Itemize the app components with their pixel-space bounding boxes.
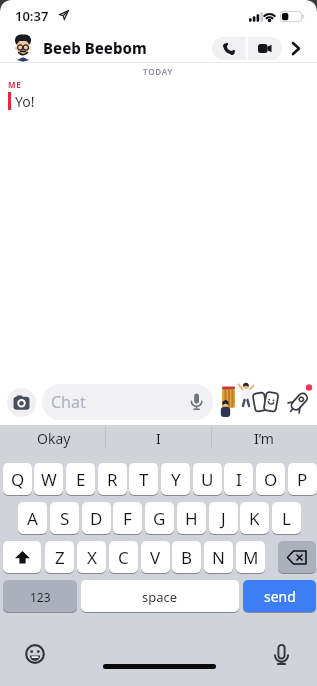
button[interactable]: 123 bbox=[3, 580, 77, 613]
staticText: C bbox=[118, 546, 129, 569]
staticText: E bbox=[76, 468, 86, 491]
button[interactable] bbox=[252, 390, 281, 417]
staticText: H bbox=[185, 507, 198, 530]
staticText: O bbox=[264, 468, 278, 491]
button[interactable] bbox=[212, 37, 246, 60]
staticText: space bbox=[142, 588, 178, 606]
staticText: F bbox=[123, 507, 132, 530]
staticText: I’m bbox=[254, 429, 274, 448]
button[interactable] bbox=[7, 388, 36, 417]
button[interactable] bbox=[288, 384, 317, 416]
button[interactable]: P bbox=[288, 463, 317, 496]
staticText: 123 bbox=[30, 589, 51, 605]
button[interactable] bbox=[278, 541, 316, 574]
button[interactable]: R bbox=[98, 463, 127, 496]
staticText: D bbox=[90, 507, 103, 530]
staticText: ME bbox=[8, 79, 22, 90]
staticText: Beeb Beebom bbox=[43, 38, 147, 58]
button[interactable]: A bbox=[18, 502, 47, 535]
button[interactable]: I’m bbox=[212, 427, 316, 449]
button[interactable]: J bbox=[209, 502, 238, 535]
staticText: R bbox=[107, 468, 118, 491]
staticText: G bbox=[153, 507, 166, 530]
staticText: TODAY bbox=[143, 66, 174, 77]
staticText: 10:37 bbox=[15, 7, 49, 25]
button[interactable] bbox=[25, 644, 45, 664]
staticText: Z bbox=[55, 546, 65, 569]
button[interactable]: L bbox=[272, 502, 301, 535]
staticText: Okay bbox=[37, 429, 71, 448]
staticText: Q bbox=[11, 468, 25, 491]
staticText: W bbox=[41, 468, 57, 491]
button[interactable]: N bbox=[204, 541, 233, 574]
staticText: V bbox=[150, 546, 161, 569]
button[interactable] bbox=[3, 541, 41, 574]
staticText: I bbox=[236, 468, 242, 491]
button[interactable]: send bbox=[243, 580, 316, 613]
button[interactable]: Y bbox=[161, 463, 190, 496]
button[interactable]: Z bbox=[45, 541, 74, 574]
button[interactable]: D bbox=[82, 502, 111, 535]
staticText: send bbox=[264, 587, 296, 606]
button[interactable]: G bbox=[145, 502, 174, 535]
button[interactable] bbox=[219, 380, 255, 418]
button[interactable]: M bbox=[236, 541, 265, 574]
button[interactable]: W bbox=[34, 463, 63, 496]
button[interactable]: U bbox=[193, 463, 222, 496]
staticText: B bbox=[181, 546, 193, 569]
staticText: S bbox=[60, 507, 70, 530]
staticText: L bbox=[282, 507, 291, 530]
button[interactable]: I bbox=[106, 427, 211, 449]
button[interactable]: V bbox=[141, 541, 170, 574]
button[interactable]: T bbox=[129, 463, 158, 496]
button[interactable]: Okay bbox=[10, 427, 98, 449]
button[interactable] bbox=[274, 644, 289, 665]
button[interactable]: X bbox=[77, 541, 106, 574]
button[interactable]: space bbox=[81, 580, 239, 613]
staticText: J bbox=[221, 507, 226, 530]
button[interactable]: I bbox=[224, 463, 253, 496]
button[interactable]: Q bbox=[3, 463, 32, 496]
staticText: Y bbox=[171, 468, 181, 491]
button[interactable]: C bbox=[109, 541, 138, 574]
staticText: A bbox=[27, 507, 38, 530]
button[interactable]: B bbox=[172, 541, 201, 574]
staticText: P bbox=[297, 468, 308, 491]
button[interactable]: O bbox=[256, 463, 285, 496]
button[interactable]: F bbox=[113, 502, 142, 535]
staticText: Chat bbox=[51, 391, 86, 413]
staticText: K bbox=[249, 507, 260, 530]
staticText: Yo! bbox=[15, 92, 35, 111]
button[interactable] bbox=[248, 37, 282, 60]
staticText: X bbox=[87, 546, 97, 569]
button[interactable]: H bbox=[177, 502, 206, 535]
button[interactable]: Chat bbox=[42, 384, 213, 420]
staticText: I bbox=[156, 429, 161, 448]
staticText: N bbox=[212, 546, 225, 569]
button[interactable]: E bbox=[66, 463, 95, 496]
staticText: U bbox=[201, 468, 214, 491]
staticText: M bbox=[243, 546, 259, 569]
button[interactable]: S bbox=[50, 502, 79, 535]
button[interactable]: K bbox=[240, 502, 269, 535]
staticText: T bbox=[139, 468, 149, 491]
button[interactable] bbox=[286, 38, 306, 58]
